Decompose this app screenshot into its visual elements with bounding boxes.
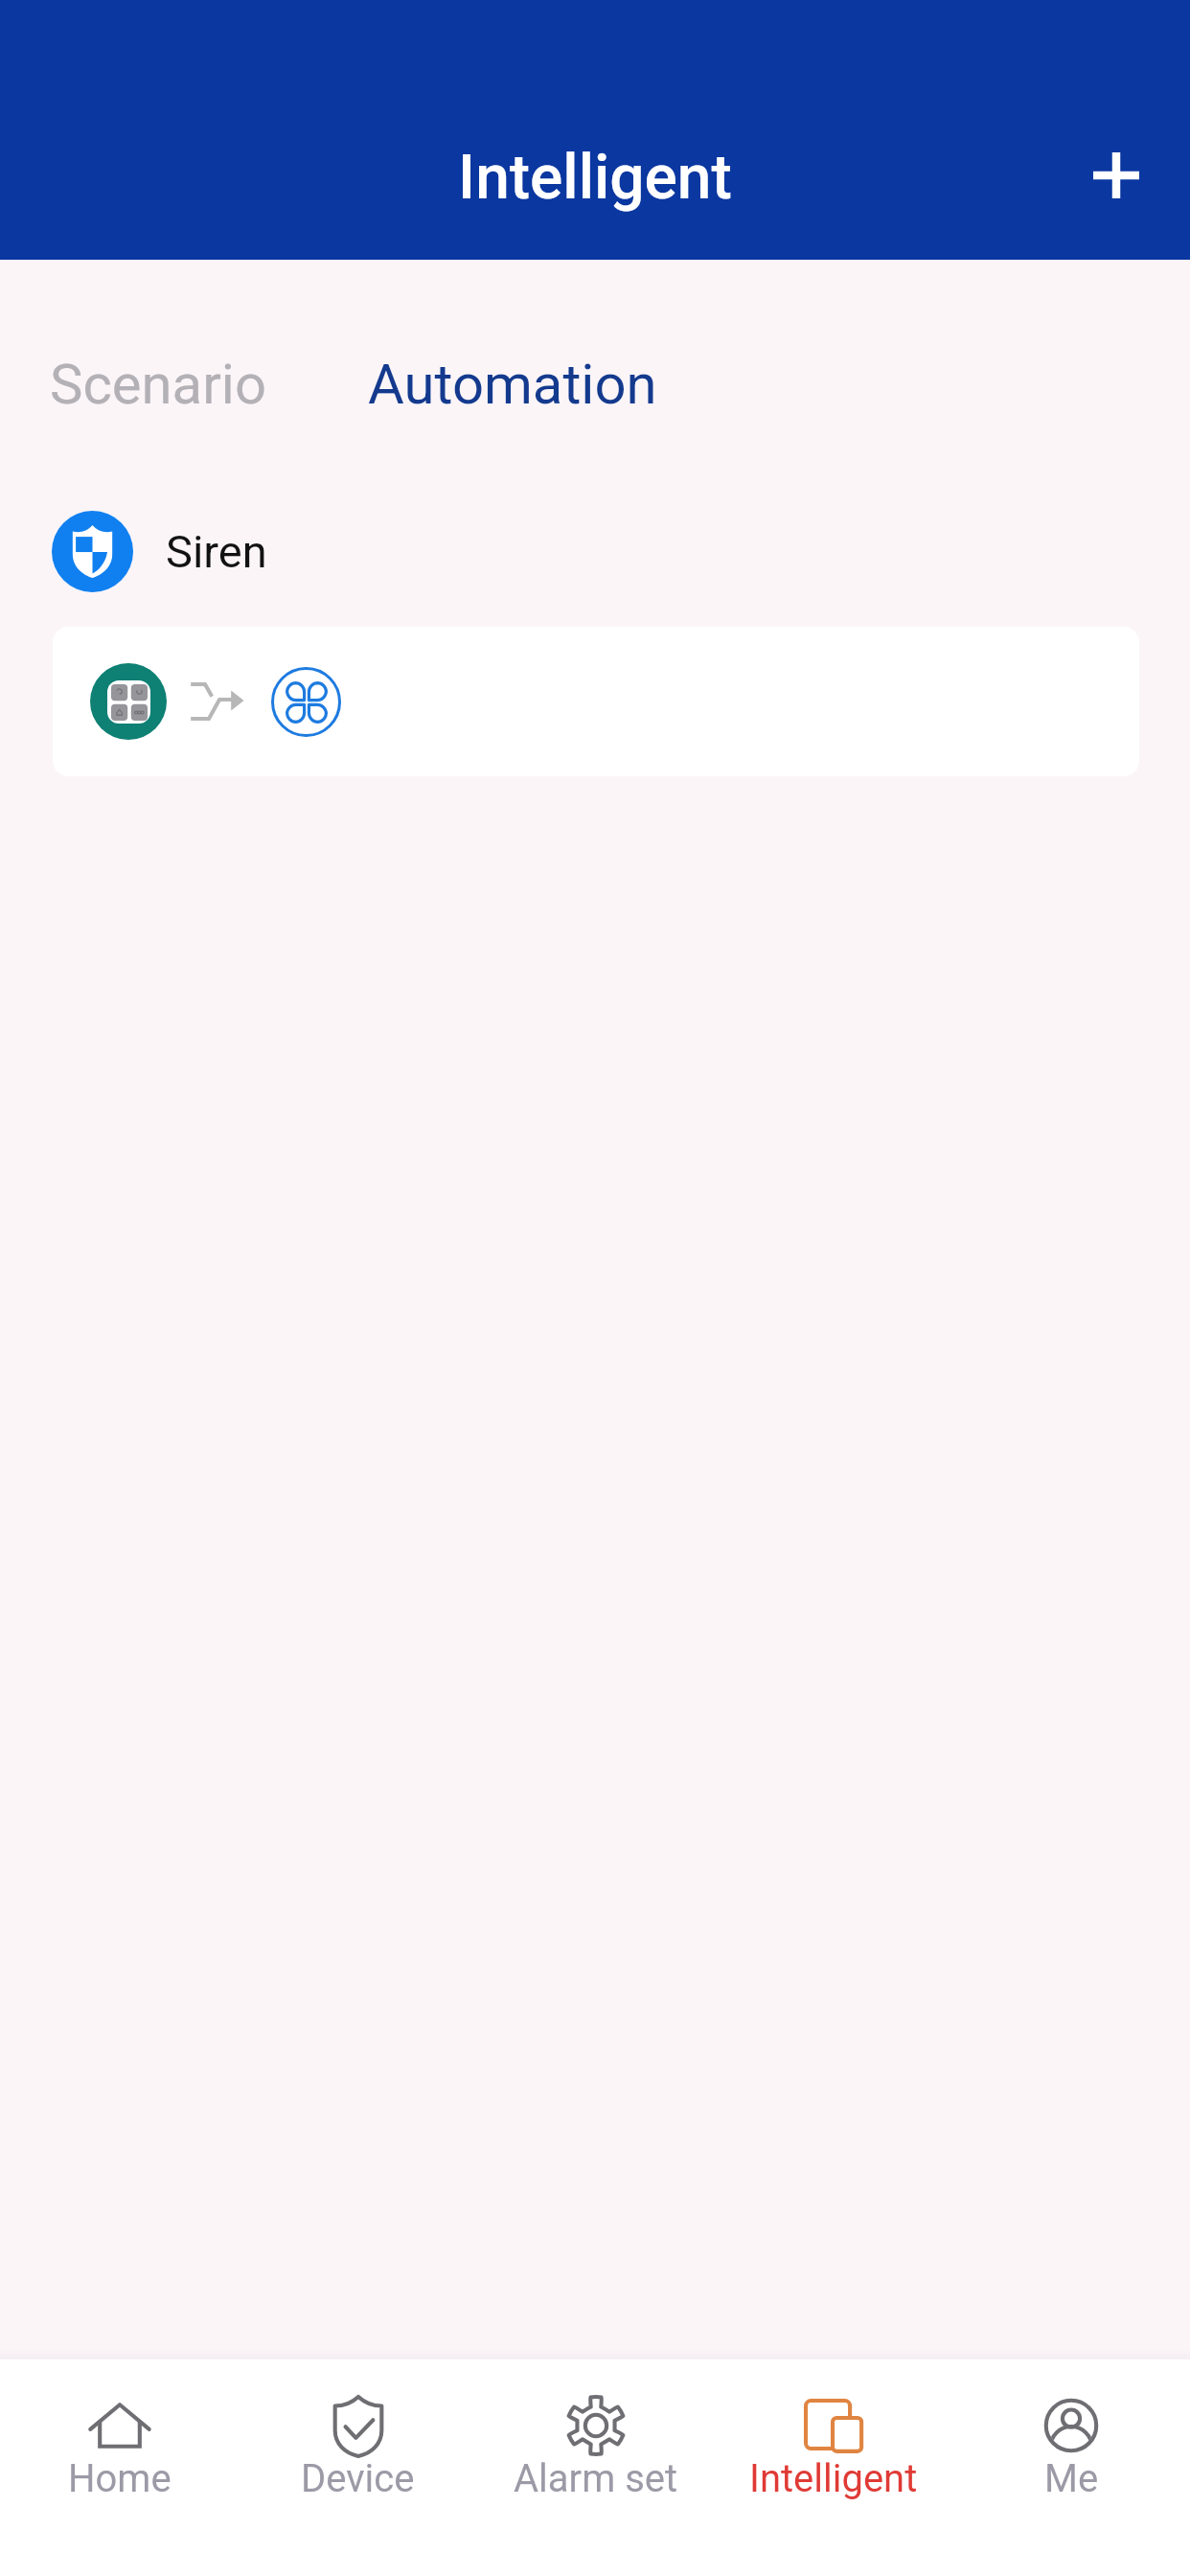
button[interactable]: Intelligent [715, 2359, 952, 2513]
button[interactable]: Automation [318, 336, 707, 432]
button[interactable]: Home [0, 2359, 239, 2513]
button[interactable]: Me [952, 2359, 1190, 2513]
staticText: Device [301, 2456, 415, 2501]
staticText: Me [1044, 2456, 1099, 2501]
staticText: Intelligent [458, 142, 732, 214]
button[interactable]: Siren [0, 511, 1190, 592]
button[interactable]: Device [239, 2359, 477, 2513]
button[interactable]: Scenario [0, 336, 318, 432]
staticText: Home [68, 2456, 172, 2501]
staticText: Intelligent [749, 2456, 918, 2501]
staticText: Scenario [50, 352, 266, 417]
button[interactable]: Alarm set [477, 2359, 715, 2513]
staticText: Alarm set [514, 2456, 678, 2501]
staticText: Automation [368, 352, 657, 417]
button[interactable]: Add [1053, 112, 1179, 239]
staticText: Siren [166, 525, 267, 578]
button[interactable] [53, 627, 1139, 776]
